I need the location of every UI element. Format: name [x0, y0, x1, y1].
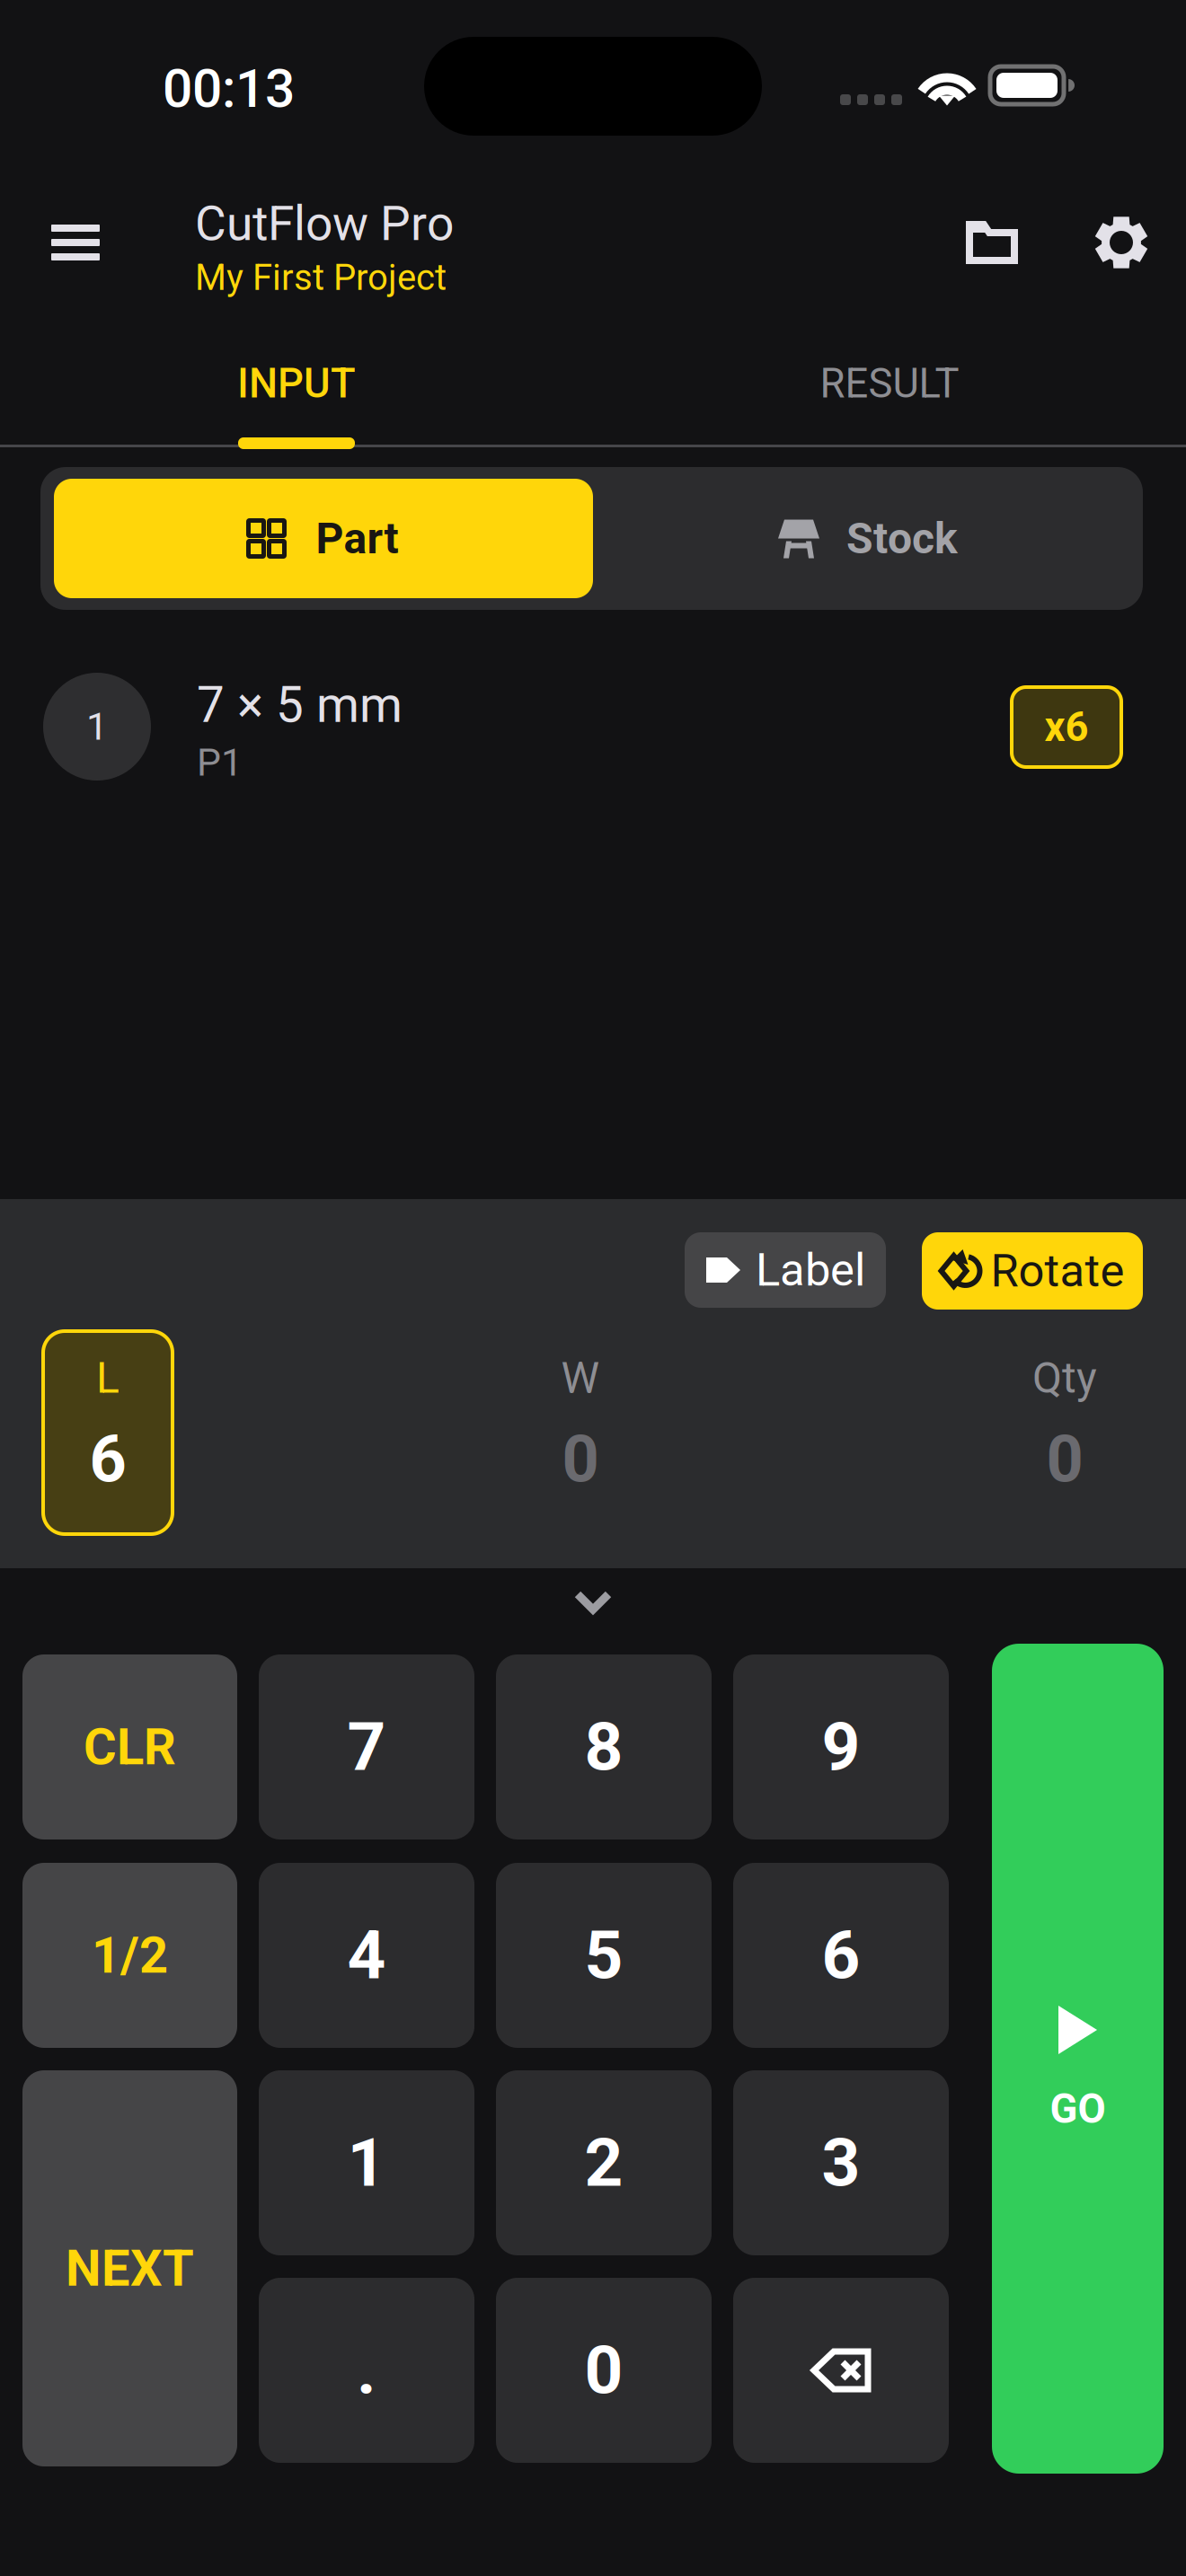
staticText: 00:13 [163, 58, 295, 120]
staticText: RESULT [820, 360, 959, 407]
button[interactable]: 1 [22, 656, 1164, 799]
staticText: L [96, 1353, 119, 1403]
staticText: 8 [584, 1708, 623, 1786]
button[interactable]: 0 [496, 2278, 712, 2463]
button[interactable]: Label [685, 1232, 886, 1308]
staticText: W [561, 1353, 600, 1403]
button[interactable]: Projects [943, 193, 1041, 292]
button[interactable]: CLR [22, 1654, 237, 1839]
staticText: Rotate [991, 1244, 1124, 1298]
button[interactable]: W [491, 1331, 670, 1534]
button[interactable]: 9 [733, 1654, 949, 1839]
staticText: 0 [584, 2331, 623, 2410]
staticText: 7 [347, 1708, 386, 1786]
button[interactable]: 5 [496, 1863, 712, 2048]
staticText: 3 [822, 2123, 860, 2202]
button[interactable]: Delete [733, 2278, 949, 2463]
button[interactable]: Qty [975, 1331, 1155, 1534]
button[interactable]: . [259, 2278, 474, 2463]
button[interactable]: GO [992, 1644, 1164, 2474]
staticText: 5 [584, 1916, 623, 1995]
staticText: x6 [1044, 703, 1089, 751]
staticText: GO [1050, 2085, 1106, 2133]
staticText: 7 × 5 mm [197, 676, 403, 734]
button[interactable]: 4 [259, 1863, 474, 2048]
staticText: INPUT [237, 360, 356, 407]
staticText: Stock [846, 513, 958, 564]
staticText: Label [756, 1243, 865, 1297]
button[interactable]: Settings [1072, 193, 1171, 292]
button[interactable]: 1/2 [22, 1863, 237, 2048]
staticText: P1 [197, 740, 243, 785]
button[interactable]: 1 [259, 2070, 474, 2255]
staticText: 4 [347, 1916, 386, 1995]
button[interactable]: 6 [733, 1863, 949, 2048]
button[interactable]: 3 [733, 2070, 949, 2255]
button[interactable]: INPUT [0, 350, 593, 449]
staticText: 0 [1046, 1422, 1083, 1497]
staticText: 1/2 [92, 1926, 168, 1985]
staticText: 2 [584, 2123, 623, 2202]
staticText: 6 [822, 1916, 860, 1995]
staticText: Qty [1032, 1353, 1097, 1403]
staticText: My First Project [195, 257, 447, 299]
button[interactable]: RESULT [593, 350, 1186, 449]
staticText: 0 [562, 1422, 599, 1497]
staticText: CutFlow Pro [195, 196, 454, 252]
button[interactable]: Menu [26, 193, 125, 292]
staticText: CLR [84, 1718, 176, 1776]
button[interactable]: 2 [496, 2070, 712, 2255]
button[interactable]: NEXT [22, 2070, 237, 2466]
button[interactable]: 8 [496, 1654, 712, 1839]
staticText: 9 [822, 1708, 860, 1786]
staticText: 1 [86, 704, 108, 749]
staticText: . [357, 2331, 376, 2410]
staticText: 6 [89, 1422, 126, 1497]
staticText: Part [316, 513, 398, 564]
button[interactable]: Stock [593, 479, 1143, 598]
staticText: 1 [347, 2123, 386, 2202]
button[interactable]: Rotate [922, 1232, 1143, 1310]
button[interactable]: Part [54, 479, 593, 598]
staticText: NEXT [66, 2239, 194, 2298]
button[interactable]: L [43, 1331, 173, 1534]
button[interactable]: Collapse keypad [573, 1590, 613, 1615]
button[interactable]: 7 [259, 1654, 474, 1839]
